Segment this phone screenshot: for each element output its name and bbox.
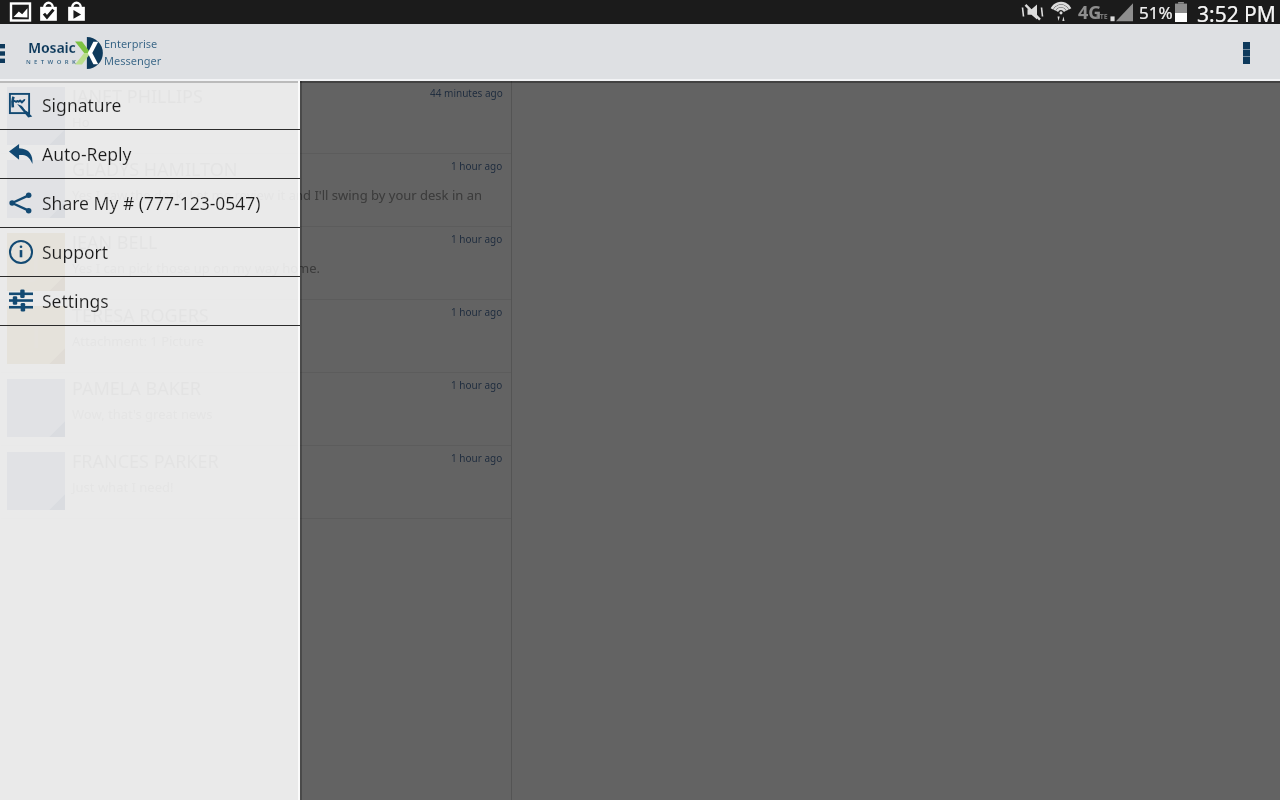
staticText: 1 hour ago [451, 159, 503, 173]
staticText: J [30, 239, 40, 285]
staticText: N E T W O R K [26, 58, 77, 66]
staticText: JEAN BELL [71, 230, 157, 255]
staticText: Yes I saw the deck. Let me review it and… [71, 186, 481, 204]
staticText: GLADYS HAMILTON [72, 157, 238, 182]
button[interactable]: G [1, 154, 300, 227]
staticText: Yes I saw the deck. Let me review it and… [72, 186, 300, 204]
staticText: 4G [1078, 0, 1102, 24]
button[interactable]: Signature [0, 81, 300, 129]
button[interactable]: Share My # (777-123-0547) [0, 179, 300, 227]
staticText: Attachment: 1 Picture [71, 332, 481, 350]
staticText: T [26, 312, 45, 358]
button[interactable]: J [1, 227, 300, 300]
staticText: Support [42, 240, 109, 264]
button[interactable]: J [0, 81, 511, 154]
button[interactable]: Navigation menu [0, 34, 13, 72]
button[interactable]: Auto-Reply [0, 130, 300, 178]
staticText: G [23, 166, 48, 212]
staticText: JANET PHILLIPS [72, 84, 203, 109]
staticText: 1 hour ago [451, 451, 503, 465]
staticText: J [31, 93, 41, 139]
staticText: 1 hour ago [451, 378, 503, 392]
staticText: JEAN BELL [72, 230, 158, 255]
staticText: LTE [1096, 12, 1108, 22]
staticText: Ho [71, 113, 481, 131]
button[interactable]: More options [1228, 35, 1264, 71]
staticText: Settings [42, 289, 109, 313]
staticText: Signature [42, 93, 122, 117]
staticText: 44 minutes ago [430, 86, 503, 100]
staticText: Yes I can pick those up on my way home. [71, 259, 481, 277]
staticText: Ho [72, 113, 300, 131]
button[interactable]: G [0, 154, 511, 227]
button[interactable]: F [0, 446, 511, 519]
button[interactable]: Support [0, 228, 300, 276]
button[interactable]: T [0, 300, 511, 373]
button[interactable]: Settings [0, 277, 300, 325]
staticText: TERESA ROGERS [72, 303, 209, 328]
staticText: GLADYS HAMILTON [71, 157, 237, 182]
staticText: G [24, 166, 49, 212]
staticText: Auto-Reply [42, 142, 132, 166]
staticText: J [30, 93, 40, 139]
staticText: Just what I need! [71, 478, 481, 496]
staticText: Share My # (777-123-0547) [42, 191, 261, 215]
button[interactable]: F [1, 446, 300, 519]
staticText: 1 hour ago [451, 232, 503, 246]
staticText: Messenger [104, 53, 162, 68]
staticText: Wow, that's great news [71, 405, 481, 423]
staticText: Yes I can pick those up on my way home. [72, 259, 300, 277]
staticText: TERESA ROGERS [71, 303, 208, 328]
staticText: 1 hour ago [451, 305, 503, 319]
button[interactable]: J [0, 227, 511, 300]
staticText: 3:52 PM [1197, 0, 1276, 24]
button[interactable]: T [1, 300, 300, 373]
staticText: T [27, 312, 46, 358]
staticText: 51% [1139, 1, 1173, 24]
staticText: JANET PHILLIPS [71, 84, 202, 109]
button[interactable]: J [1, 81, 300, 154]
staticText: J [31, 239, 41, 285]
button[interactable]: P [1, 373, 300, 446]
staticText: Mosaic [28, 38, 76, 57]
button[interactable]: P [0, 373, 511, 446]
staticText: Enterprise [104, 36, 158, 51]
